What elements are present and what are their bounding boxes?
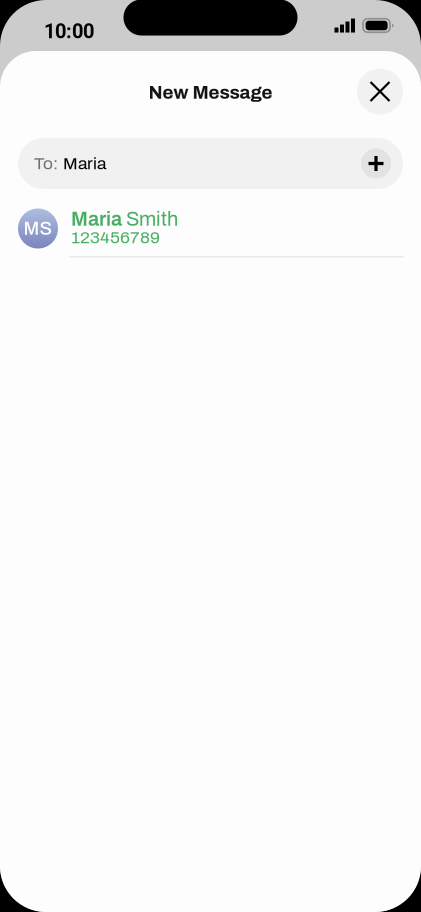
button[interactable]: Close [357,68,403,114]
staticText: 123456789 [71,228,160,247]
staticText: Smith [122,208,178,230]
staticText: Maria [71,208,122,230]
staticText: 10:00 [44,20,94,43]
staticText: New Message [148,82,272,103]
staticText: MS [23,218,52,239]
staticText: To: [34,154,58,173]
button[interactable]: MS [0,197,421,257]
staticText: Maria [63,154,106,173]
button[interactable]: Add contact [361,148,391,178]
